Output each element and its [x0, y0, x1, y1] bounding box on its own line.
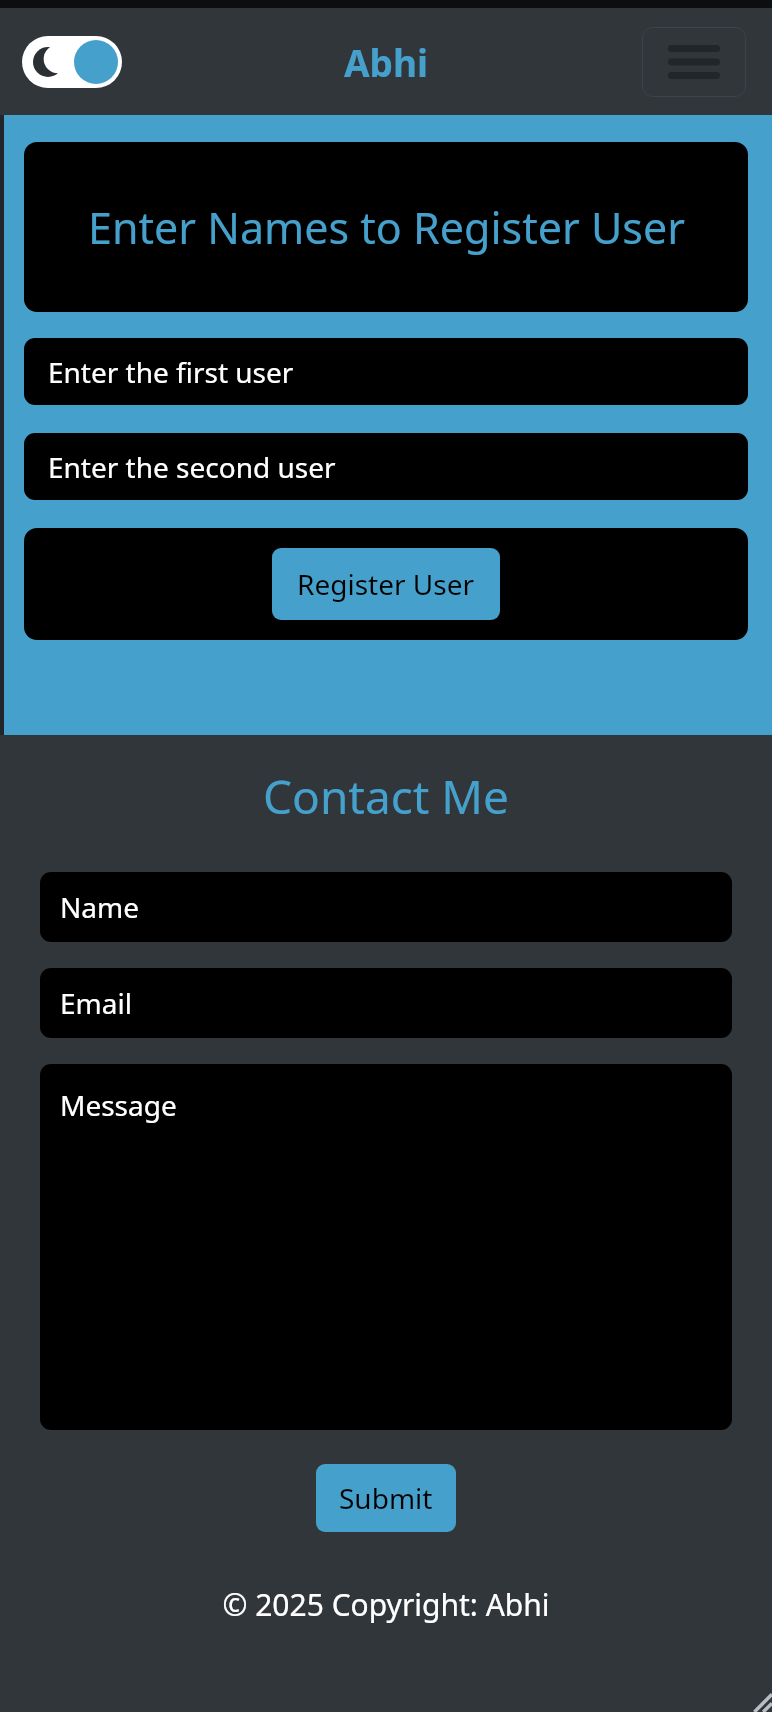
staticText: Register User [297, 565, 475, 603]
button[interactable]: Toggle dark mode [22, 36, 122, 88]
button[interactable]: Register User [272, 548, 500, 620]
staticText: Email [60, 984, 132, 1022]
staticText: Abhi [344, 37, 429, 87]
staticText: © 2025 Copyright: Abhi [40, 1584, 732, 1625]
button[interactable]: Message [40, 1064, 732, 1430]
button[interactable]: Enter the first user [24, 338, 748, 405]
button[interactable]: Enter the second user [24, 433, 748, 500]
staticText: Enter the first user [48, 353, 294, 391]
staticText: Enter the second user [48, 448, 336, 486]
staticText: Name [60, 888, 139, 926]
staticText: Enter Names to Register User [88, 198, 685, 257]
button[interactable]: Email [40, 968, 732, 1038]
staticText: Message [60, 1086, 177, 1124]
button[interactable]: Name [40, 872, 732, 942]
button[interactable]: Menu [642, 27, 746, 97]
staticText: Contact Me [40, 765, 732, 828]
button[interactable]: Submit [316, 1464, 456, 1532]
staticText: Submit [339, 1479, 433, 1517]
